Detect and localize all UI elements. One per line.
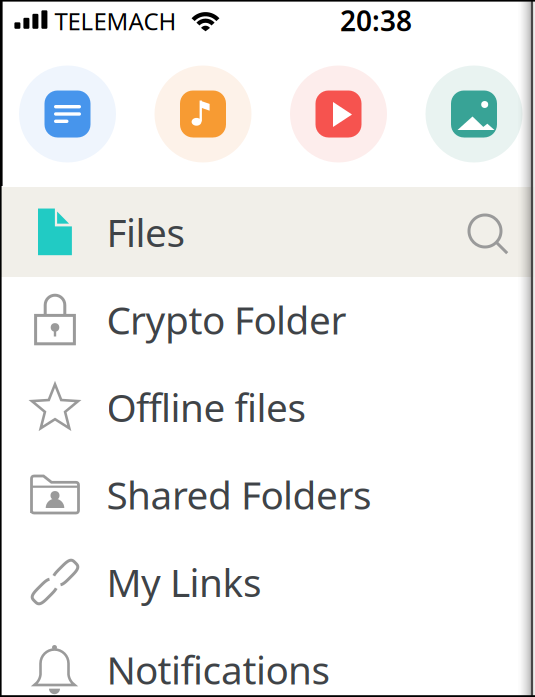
staticText: Crypto Folder [106,294,346,345]
button[interactable]: Search [461,207,517,263]
button[interactable]: Video [290,65,387,162]
staticText: My Links [106,556,262,608]
staticText: Offline files [106,381,306,433]
staticText: 20:38 [340,2,412,39]
button[interactable]: Audio [154,65,251,162]
staticText: Notifications [106,644,330,695]
button[interactable]: Offline files [0,363,531,451]
button[interactable]: Documents [19,65,116,162]
staticText: Files [106,206,185,258]
button[interactable]: Photos [425,65,522,162]
button[interactable]: Notifications [0,625,531,697]
staticText: Shared Folders [106,469,372,520]
button[interactable]: Files [0,188,531,276]
button[interactable]: Crypto Folder [0,275,531,363]
staticText: TELEMACH [54,5,176,37]
button[interactable]: Shared Folders [0,450,531,538]
button[interactable]: My Links [0,538,531,626]
